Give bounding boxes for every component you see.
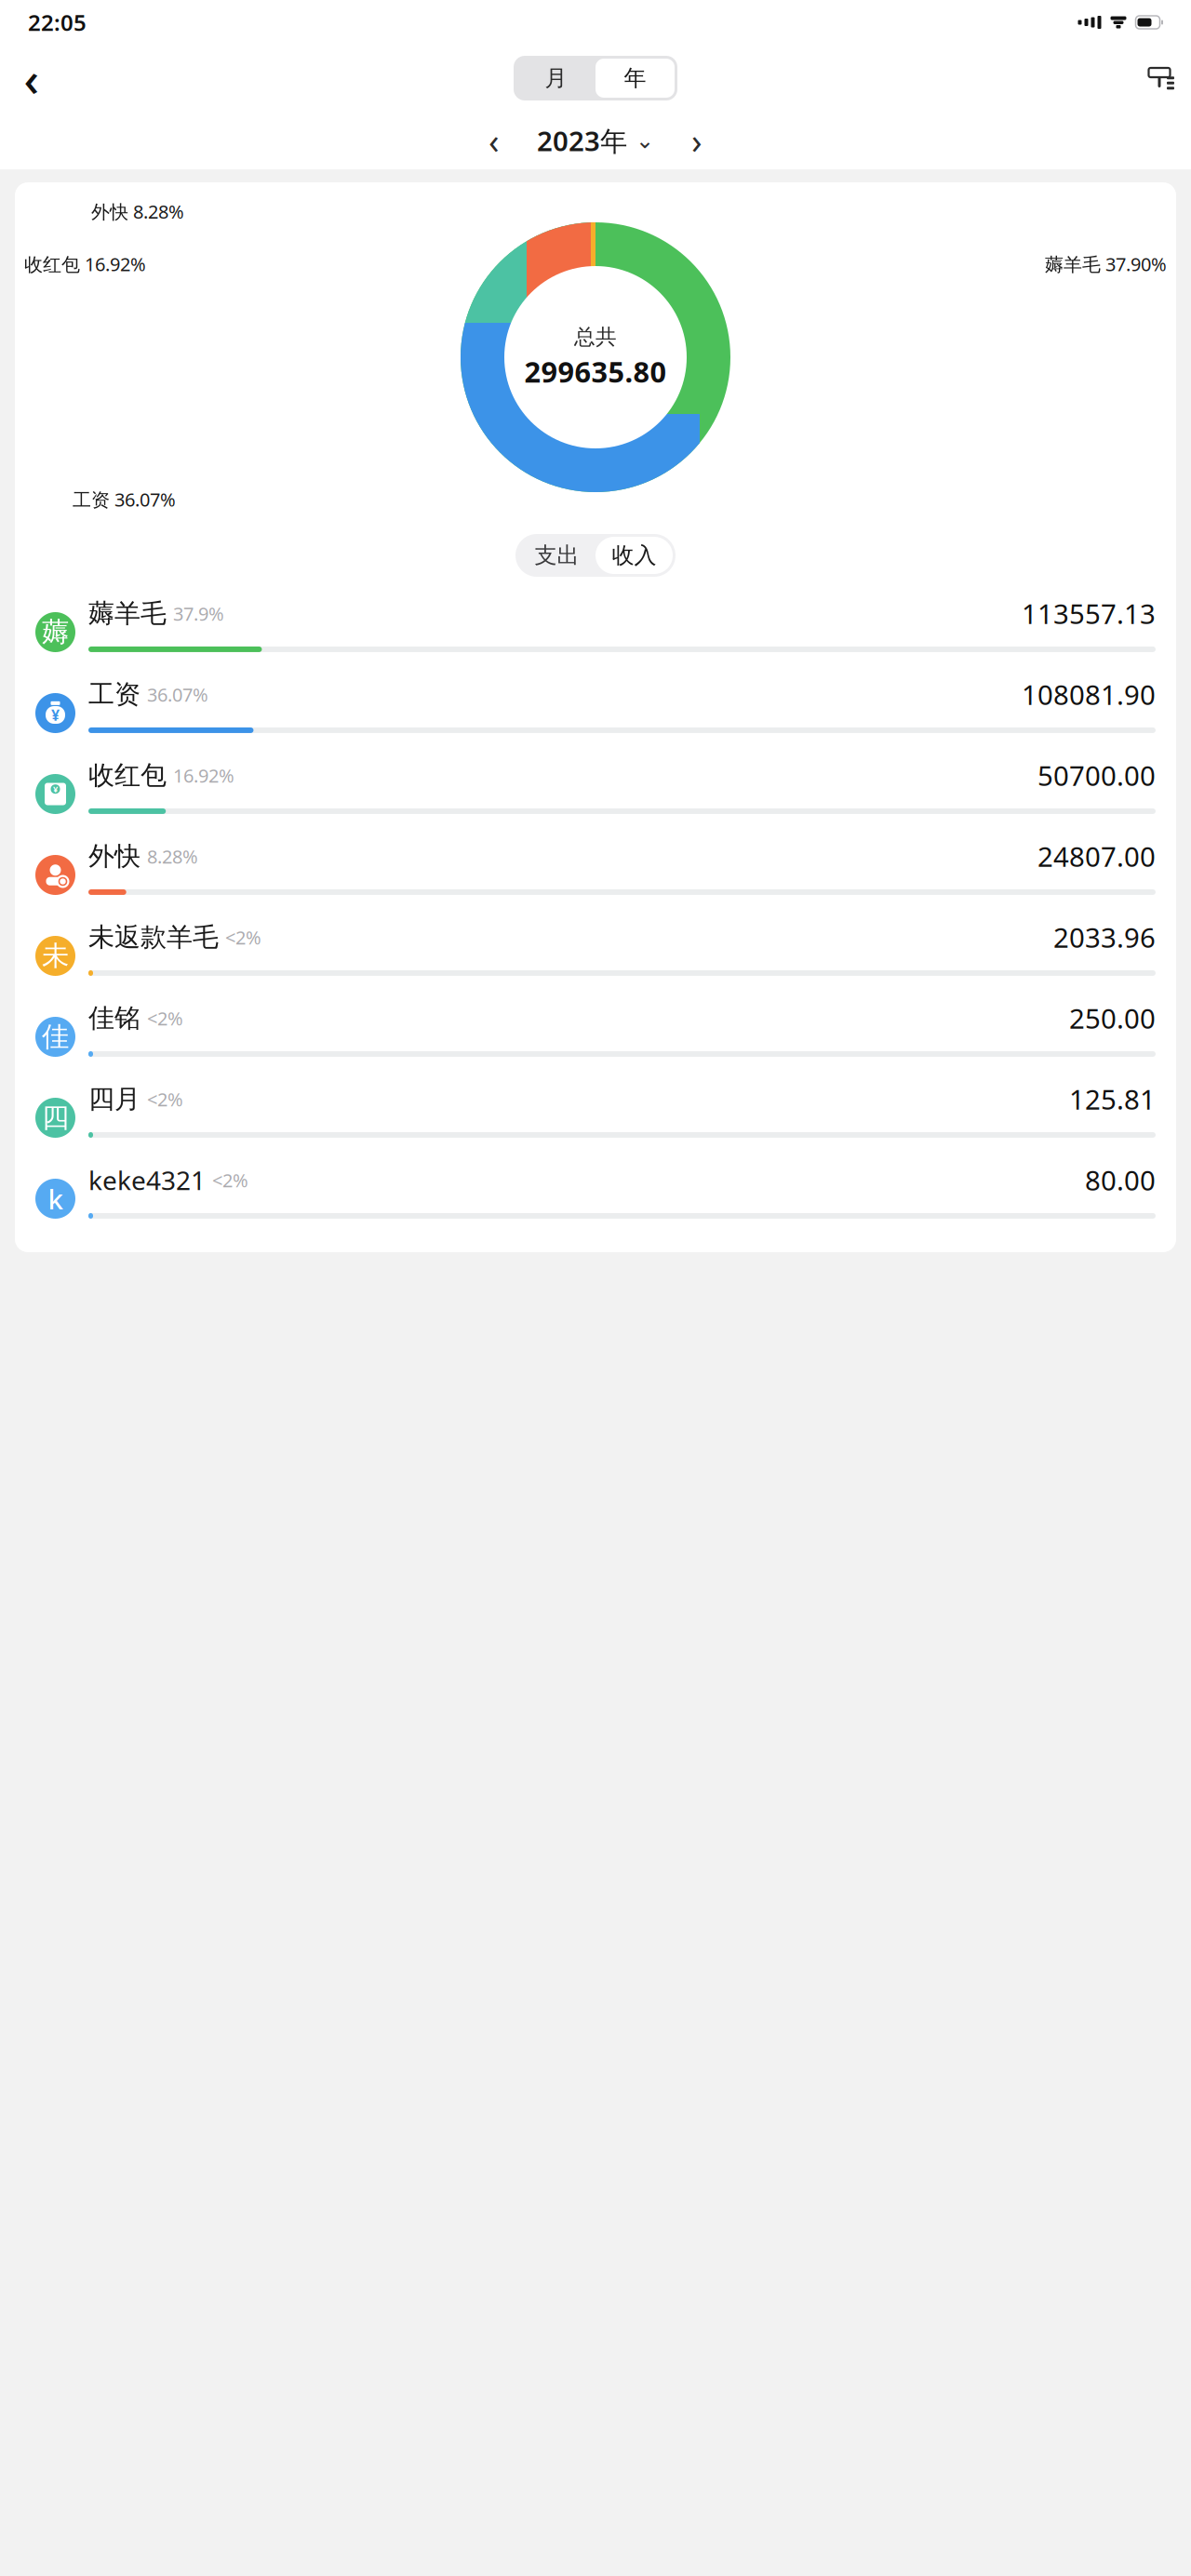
staticText: 37.9% [173, 601, 224, 626]
staticText: <2% [225, 925, 261, 950]
staticText: 收红包 16.92% [24, 252, 146, 276]
staticText: 8.28% [147, 844, 198, 869]
staticText: 四 [42, 1101, 69, 1135]
staticText: <2% [147, 1006, 183, 1031]
staticText: 外快 [88, 840, 141, 872]
staticText: 299635.80 [524, 353, 667, 391]
staticText: 薅羊毛 37.90% [1045, 252, 1167, 276]
staticText: <2% [147, 1087, 183, 1112]
staticText: 50700.00 [1037, 757, 1156, 794]
staticText: keke4321 [88, 1163, 206, 1197]
button[interactable]: ¥ [35, 673, 1156, 754]
button[interactable]: 月 [516, 59, 595, 98]
staticText: › [691, 117, 703, 164]
staticText: k [48, 1181, 63, 1217]
staticText: 年 [624, 64, 646, 92]
staticText: 工资 36.07% [73, 487, 176, 512]
staticText: ‹ [488, 117, 500, 164]
staticText: ⌄ [636, 128, 654, 153]
staticText: 外快 8.28% [91, 199, 184, 224]
staticText: 2033.96 [1053, 919, 1156, 955]
staticText: 收红包 [88, 759, 167, 791]
staticText: ¥ [51, 705, 60, 725]
staticText: 佳铭 [88, 1002, 141, 1034]
button[interactable]: 外快 [35, 834, 1156, 915]
staticText: 24807.00 [1037, 838, 1156, 874]
staticText: <2% [212, 1168, 248, 1192]
button[interactable]: 收入 [595, 537, 673, 574]
button[interactable]: 下一年 [675, 118, 719, 163]
staticText: 月 [545, 64, 567, 92]
staticText: 工资 [88, 678, 141, 710]
button[interactable]: 上一年 [472, 118, 516, 163]
staticText: 佳 [42, 1020, 69, 1054]
button[interactable]: 2023年 [537, 118, 654, 163]
button[interactable]: ¥ [35, 754, 1156, 834]
button[interactable]: 年 [595, 59, 675, 98]
button[interactable]: 筛选 [1135, 54, 1184, 102]
staticText: 2023年 [537, 122, 627, 159]
staticText: 四月 [88, 1083, 141, 1115]
staticText: 薅 [42, 615, 69, 649]
staticText: 108081.90 [1022, 676, 1156, 713]
staticText: 80.00 [1085, 1162, 1156, 1198]
button[interactable]: k [35, 1158, 1156, 1239]
staticText: 22:05 [28, 8, 87, 37]
staticText: 250.00 [1069, 1000, 1156, 1036]
button[interactable]: 未 [35, 915, 1156, 996]
staticText: 总共 [574, 324, 617, 350]
staticText: 收入 [612, 542, 656, 569]
button[interactable]: 四 [35, 1077, 1156, 1158]
staticText: 未返款羊毛 [88, 921, 219, 953]
staticText: 125.81 [1069, 1081, 1156, 1117]
button[interactable]: 薅 [35, 592, 1156, 673]
button[interactable]: 佳 [35, 996, 1156, 1077]
button[interactable]: 支出 [518, 537, 595, 574]
staticText: 16.92% [173, 763, 234, 788]
staticText: 未 [42, 939, 69, 973]
staticText: 薅羊毛 [88, 598, 167, 630]
staticText: ‹ [24, 47, 40, 109]
staticText: ¥ [53, 783, 58, 795]
button[interactable]: 返回 [7, 54, 56, 102]
staticText: 113557.13 [1022, 595, 1156, 632]
staticText: 支出 [535, 542, 579, 569]
staticText: 36.07% [147, 682, 208, 707]
